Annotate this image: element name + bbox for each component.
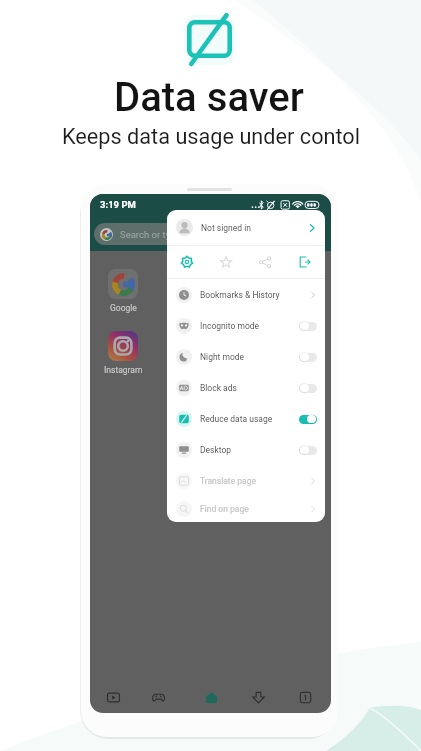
button[interactable]: Home xyxy=(200,686,222,708)
button[interactable]: Not signed in xyxy=(167,210,325,245)
staticText: Find on page xyxy=(200,504,249,514)
button[interactable]: Settings xyxy=(167,246,206,278)
button[interactable]: toggle xyxy=(299,445,317,455)
button[interactable]: Downloads xyxy=(247,686,269,708)
button[interactable]: Night mode xyxy=(167,341,325,372)
staticText: Bookmarks & History xyxy=(200,290,280,300)
staticText: 3:19 PM xyxy=(100,199,136,210)
staticText: Block ads xyxy=(200,383,237,393)
staticText: Not signed in xyxy=(201,223,251,233)
staticText: Night mode xyxy=(200,352,245,362)
button[interactable]: Translate page xyxy=(167,465,325,496)
staticText: Reduce data usage xyxy=(200,414,273,424)
button[interactable]: Bookmarks & History xyxy=(167,279,325,310)
button[interactable]: Desktop xyxy=(167,434,325,465)
button[interactable]: Block ads xyxy=(167,372,325,403)
button[interactable]: toggle xyxy=(299,414,317,424)
button[interactable]: Instagram xyxy=(100,331,146,375)
button[interactable]: Google xyxy=(100,269,146,313)
button[interactable]: Exit xyxy=(285,246,325,278)
button[interactable]: Bookmark xyxy=(206,246,245,278)
button[interactable]: Games xyxy=(147,686,169,708)
button[interactable]: Tabs xyxy=(294,686,316,708)
staticText: Desktop xyxy=(200,445,232,455)
button[interactable]: Video xyxy=(102,686,124,708)
staticText: Data saver xyxy=(114,74,304,121)
button[interactable]: Share xyxy=(245,246,285,278)
button[interactable]: toggle xyxy=(299,352,317,362)
staticText: Google xyxy=(110,303,137,313)
button[interactable]: Reduce data usage xyxy=(167,403,325,434)
button[interactable]: Find on page xyxy=(167,496,325,522)
staticText: Instagram xyxy=(104,365,143,375)
button[interactable]: toggle xyxy=(299,383,317,393)
staticText: Translate page xyxy=(200,476,256,486)
staticText: Search or type web address xyxy=(120,229,237,240)
button[interactable]: Incognito mode xyxy=(167,310,325,341)
button[interactable]: toggle xyxy=(299,321,317,331)
staticText: Incognito mode xyxy=(200,321,260,331)
staticText: Keeps data usage under contol xyxy=(62,124,361,149)
